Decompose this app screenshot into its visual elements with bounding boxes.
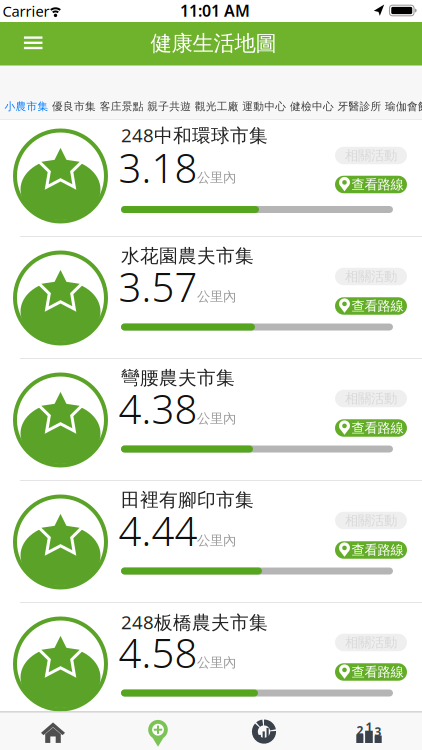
button[interactable]: 相關活動 <box>335 512 407 529</box>
staticText: 4.38 <box>118 382 197 435</box>
staticText: 相關活動 <box>345 268 397 285</box>
staticText: 2 <box>356 722 363 738</box>
staticText: 公里內 <box>197 169 236 186</box>
staticText: 公里內 <box>197 288 236 305</box>
staticText: 查看路線 <box>351 664 403 680</box>
staticText: 運動中心 <box>242 100 286 113</box>
staticText: 相關活動 <box>345 512 397 529</box>
button[interactable]: 相關活動 <box>335 634 407 651</box>
button[interactable]: 客庄景點 <box>100 100 144 113</box>
staticText: 小農市集 <box>4 100 48 113</box>
button[interactable]: 查看路線 <box>335 297 407 315</box>
staticText: 查看路線 <box>351 542 403 558</box>
button[interactable]: 2 <box>324 715 414 749</box>
staticText: 客庄景點 <box>100 100 144 113</box>
staticText: 相關活動 <box>345 634 397 651</box>
staticText: 相關活動 <box>345 390 397 407</box>
button[interactable] <box>8 716 98 750</box>
staticText: 相關活動 <box>345 147 397 164</box>
staticText: 查看路線 <box>351 298 403 314</box>
staticText: Carrier <box>2 1 49 21</box>
staticText: 3.57 <box>118 260 197 313</box>
staticText: 公里內 <box>197 410 236 427</box>
button[interactable]: 查看路線 <box>335 419 407 437</box>
staticText: 水花園農夫市集 <box>121 244 254 267</box>
staticText: 公里內 <box>197 654 236 671</box>
button[interactable]: 親子共遊 <box>147 100 191 113</box>
staticText: 牙醫診所 <box>337 100 381 113</box>
button[interactable]: 查看路線 <box>335 176 407 193</box>
button[interactable]: 查看路線 <box>335 663 407 681</box>
button[interactable]: 健檢中心 <box>290 100 334 113</box>
staticText: 觀光工廠 <box>195 100 239 113</box>
staticText: 公里內 <box>197 532 236 549</box>
staticText: 248中和環球市集 <box>121 123 268 147</box>
staticText: 健康生活地圖 <box>150 30 276 57</box>
staticText: 4.58 <box>118 626 197 679</box>
button[interactable]: 運動中心 <box>242 100 286 113</box>
staticText: 248板橋農夫市集 <box>121 610 268 634</box>
button[interactable] <box>113 716 203 750</box>
staticText: 優良市集 <box>52 100 96 113</box>
staticText: 11:01 AM <box>180 0 250 21</box>
staticText: 彎腰農夫市集 <box>121 366 235 389</box>
staticText: 查看路線 <box>351 176 403 193</box>
button[interactable]: 查看路線 <box>335 541 407 559</box>
button[interactable]: 觀光工廠 <box>195 100 239 113</box>
staticText: 查看路線 <box>351 420 403 436</box>
staticText: 1 <box>365 719 372 735</box>
button[interactable] <box>24 36 42 49</box>
button[interactable]: 相關活動 <box>335 147 407 164</box>
button[interactable]: 優良市集 <box>52 100 96 113</box>
staticText: 3 <box>375 724 382 740</box>
staticText: 3.18 <box>118 141 197 194</box>
button[interactable] <box>219 715 309 749</box>
staticText: 親子共遊 <box>147 100 191 113</box>
button[interactable]: 相關活動 <box>335 268 407 285</box>
staticText: 4.44 <box>118 504 197 557</box>
staticText: 田裡有腳印市集 <box>121 488 254 511</box>
button[interactable]: 瑜伽會館 <box>385 100 422 113</box>
staticText: 瑜伽會館 <box>385 100 422 113</box>
button[interactable]: 牙醫診所 <box>337 100 381 113</box>
button[interactable]: 小農市集 <box>4 100 48 113</box>
staticText: 健檢中心 <box>290 100 334 113</box>
button[interactable]: 相關活動 <box>335 390 407 407</box>
